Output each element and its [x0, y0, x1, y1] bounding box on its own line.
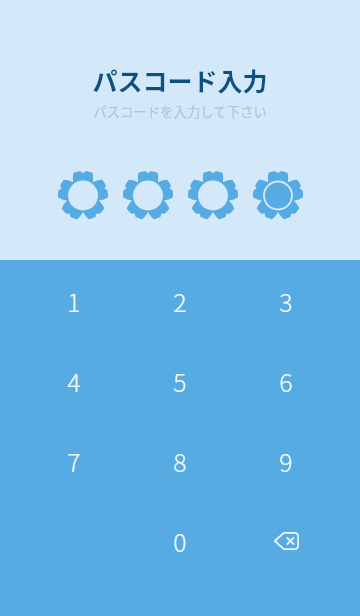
- staticText: 4: [67, 363, 81, 399]
- staticText: 2: [173, 283, 187, 319]
- button[interactable]: 9: [233, 421, 339, 501]
- button[interactable]: 8: [127, 421, 233, 501]
- button[interactable]: 2: [127, 261, 233, 341]
- staticText: パスコード入力: [92, 62, 268, 98]
- staticText: 3: [279, 283, 293, 319]
- button[interactable]: 7: [21, 421, 127, 501]
- button[interactable]: 0: [127, 501, 233, 581]
- staticText: 8: [173, 443, 187, 479]
- staticText: 5: [173, 363, 187, 399]
- staticText: 7: [67, 443, 81, 479]
- staticText: パスコードを入力して下さい: [93, 101, 267, 120]
- staticText: 9: [279, 443, 293, 479]
- button[interactable]: 5: [127, 341, 233, 421]
- button[interactable]: 1: [21, 261, 127, 341]
- staticText: 6: [279, 363, 293, 399]
- button[interactable]: 4: [21, 341, 127, 421]
- staticText: 1: [67, 283, 81, 319]
- button[interactable]: Backspace: [233, 501, 339, 581]
- staticText: 0: [173, 523, 187, 559]
- button[interactable]: 3: [233, 261, 339, 341]
- button[interactable]: 6: [233, 341, 339, 421]
